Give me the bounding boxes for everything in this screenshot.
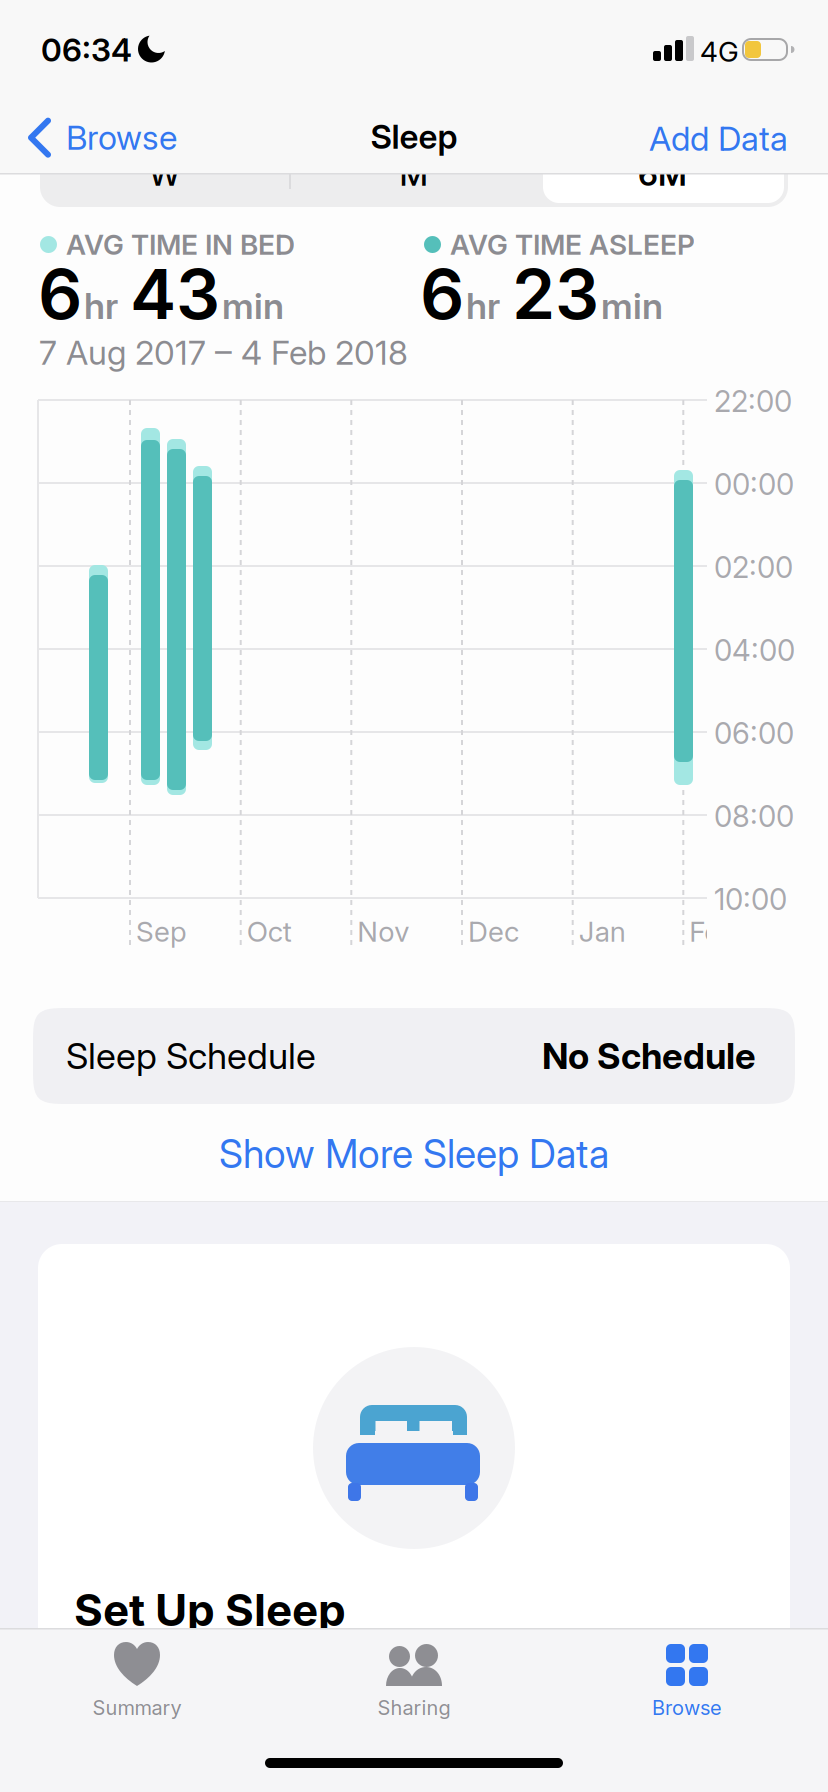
staticText: No Schedule [542,1035,756,1077]
staticText: Sleep [370,117,457,156]
button[interactable]: Add Data [649,119,788,158]
staticText: Summary [92,1696,181,1720]
staticText: 7 Aug 2017 – 4 Feb 2018 [39,333,408,372]
staticText: 23 [512,253,599,335]
staticText: 00:00 [714,467,794,502]
staticText: 6 [420,253,464,335]
button[interactable]: Sleep Schedule [33,1008,795,1104]
staticText: Dec [468,915,519,948]
staticText: Sep [136,915,187,948]
staticText: Set Up Sleep [74,1584,346,1636]
staticText: min [222,285,284,327]
staticText: 04:00 [714,633,795,668]
staticText: Browse [66,118,177,157]
button[interactable]: 6M [538,141,787,207]
staticText: 08:00 [714,799,794,834]
staticText: 6M [638,155,687,193]
staticText: Add Data [649,119,788,158]
staticText: 10:00 [714,882,787,917]
button[interactable]: Sharing [304,1642,524,1720]
staticText: Oct [247,915,292,948]
staticText: Sharing [377,1696,450,1720]
staticText: 43 [130,253,220,335]
staticText: Jan [579,915,626,948]
staticText: Browse [652,1696,722,1720]
staticText: 4G [700,35,739,68]
staticText: 02:00 [714,550,793,585]
staticText: Nov [357,915,409,948]
staticText: AVG TIME IN BED [66,228,295,261]
staticText: min [601,285,663,327]
button[interactable]: Show More Sleep Data [219,1131,609,1177]
staticText: Feb [689,915,737,948]
staticText: hr [84,285,118,327]
staticText: AVG TIME ASLEEP [450,228,695,261]
staticText: Show More Sleep Data [219,1131,609,1177]
staticText: 06:00 [714,716,794,751]
staticText: Sleep Schedule [66,1035,316,1077]
staticText: 06:34 [41,31,132,69]
button[interactable]: Browse [577,1642,797,1720]
staticText: 6 [38,253,82,335]
button[interactable]: W [40,141,289,207]
button[interactable]: Set Up Sleep [38,1244,790,1714]
staticText: hr [466,285,500,327]
staticText: 22:00 [714,384,792,419]
button[interactable]: M [289,141,538,207]
staticText: M [399,155,427,193]
button[interactable]: Summary [27,1642,247,1720]
staticText: W [149,155,180,193]
button[interactable]: Back to Browse [28,118,177,157]
